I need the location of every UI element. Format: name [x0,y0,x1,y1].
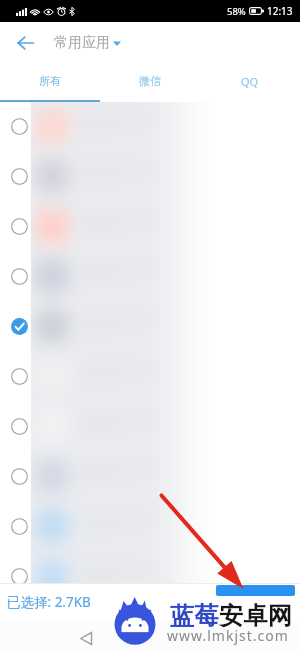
staticText: 常用应用 [54,34,110,52]
button[interactable] [0,151,300,201]
button[interactable] [0,451,300,501]
button[interactable]: Back [9,27,41,59]
staticText: 蓝莓 [170,601,219,631]
button[interactable] [0,351,300,401]
button[interactable] [0,251,300,301]
button[interactable] [0,501,300,551]
button[interactable]: 微信 [100,63,200,102]
staticText: 所有 [39,74,61,88]
button[interactable] [0,601,300,650]
button[interactable]: Back [74,626,98,650]
button[interactable] [0,101,300,151]
staticText: QQ [241,74,259,89]
staticText: 微信 [139,74,161,88]
staticText: 已选择: 2.7KB [7,593,91,611]
button[interactable]: QQ [200,63,300,102]
staticText: 12:13 [267,4,293,18]
button[interactable] [0,201,300,251]
button[interactable] [0,301,300,351]
button[interactable]: 所有 [0,63,100,102]
staticText: 58% [227,5,246,18]
button[interactable] [0,551,300,601]
button[interactable] [0,401,300,451]
button[interactable]: 常用应用 [54,34,121,52]
staticText: 安卓网 [219,601,293,631]
button[interactable] [216,585,295,596]
staticText: www.lmkjst.com [167,626,289,645]
